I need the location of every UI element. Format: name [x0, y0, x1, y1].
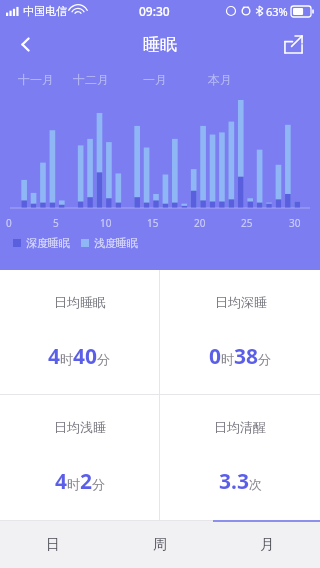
staticText: 4时40分 [48, 342, 111, 371]
staticText: 0时38分 [209, 342, 272, 371]
button[interactable]: 一月 [143, 72, 167, 87]
button[interactable]: 十一月 [18, 72, 54, 87]
staticText: 10 [100, 216, 112, 230]
button[interactable]: 周 [106, 522, 213, 568]
button[interactable]: 日均睡眠 [0, 270, 159, 394]
staticText: 睡眠 [143, 34, 177, 55]
staticText: 周 [153, 536, 167, 554]
staticText: 一月 [143, 72, 167, 87]
staticText: 日均睡眠 [54, 294, 106, 310]
button[interactable]: 日均深睡 [160, 270, 320, 394]
staticText: 日 [46, 536, 60, 554]
staticText: 0 [6, 216, 12, 230]
staticText: 20 [194, 216, 206, 230]
staticText: 15 [147, 216, 159, 230]
staticText: 日均清醒 [214, 419, 266, 435]
button[interactable]: 日均浅睡 [0, 395, 159, 520]
staticText: 本月 [208, 72, 232, 87]
staticText: 月 [260, 536, 274, 554]
staticText: 09:30 [139, 3, 170, 19]
staticText: 30 [289, 216, 301, 230]
staticText: 浅度睡眠 [94, 236, 138, 250]
button[interactable]: 日 [0, 522, 106, 568]
staticText: 深度睡眠 [26, 236, 70, 250]
button[interactable]: 日均清醒 [160, 395, 320, 520]
staticText: 日均浅睡 [54, 419, 106, 435]
button[interactable]: Back [4, 23, 46, 65]
staticText: 十二月 [73, 72, 109, 87]
staticText: 4时2分 [55, 467, 106, 496]
button[interactable]: 本月 [208, 72, 232, 87]
staticText: 日均深睡 [215, 294, 267, 310]
button[interactable]: 月 [213, 522, 320, 568]
staticText: 25 [241, 216, 253, 230]
button[interactable]: 十二月 [73, 72, 109, 87]
button[interactable]: Share [272, 23, 314, 65]
staticText: 3.3次 [219, 467, 262, 496]
staticText: 63% [266, 4, 288, 19]
staticText: 中国电信 [23, 4, 67, 18]
staticText: 十一月 [18, 72, 54, 87]
staticText: 5 [53, 216, 59, 230]
